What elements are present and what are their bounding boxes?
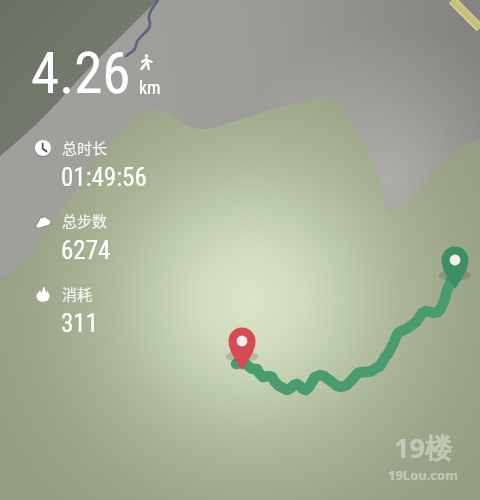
staticText: 19楼	[394, 429, 452, 466]
staticText: km	[139, 77, 161, 98]
button[interactable]: 总步数	[35, 210, 111, 265]
staticText: 总时长	[62, 137, 108, 159]
staticText: 01:49:56	[61, 163, 147, 192]
button[interactable]: 总时长	[35, 137, 147, 192]
staticText: 消耗	[62, 283, 93, 305]
staticText: 总步数	[62, 210, 108, 232]
staticText: 6274	[61, 236, 111, 265]
button[interactable]: 消耗	[35, 283, 99, 338]
staticText: 311	[61, 309, 99, 338]
staticText: 19Lou.com	[388, 466, 458, 484]
staticText: 4.26	[31, 40, 131, 107]
